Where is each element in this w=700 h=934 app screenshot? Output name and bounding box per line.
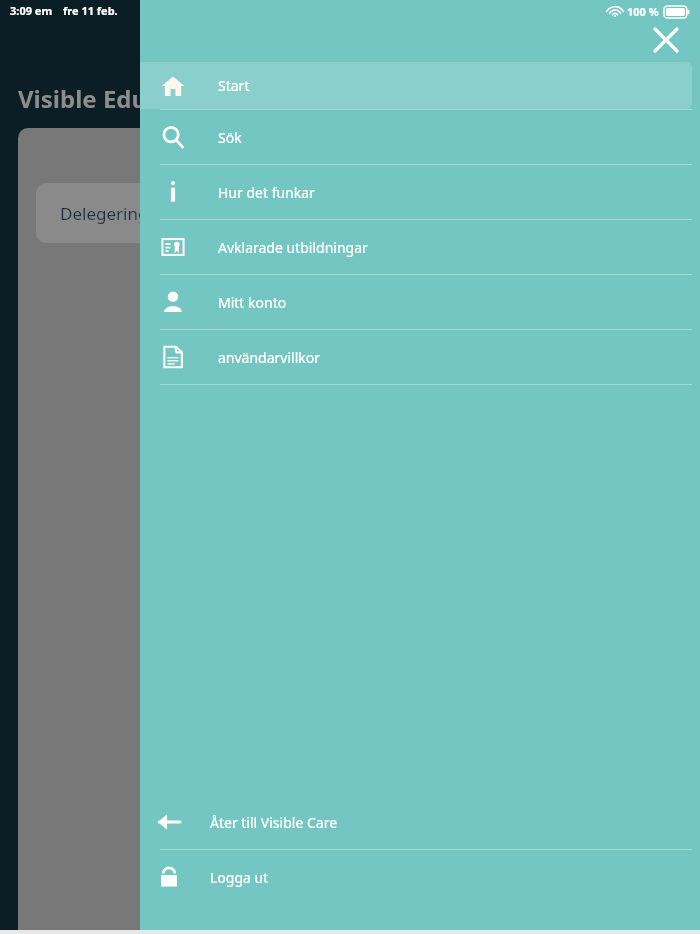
- staticText: användarvillkor: [218, 348, 321, 367]
- button[interactable]: Mitt konto: [140, 275, 700, 329]
- button[interactable]: Stäng: [648, 22, 684, 58]
- staticText: Hur det funkar: [218, 183, 315, 202]
- button[interactable]: användarvillkor: [140, 330, 700, 384]
- staticText: 3:09 em: [10, 3, 53, 18]
- staticText: Start: [218, 76, 250, 95]
- staticText: Avklarade utbildningar: [218, 238, 368, 257]
- button[interactable]: Start: [140, 62, 692, 109]
- button[interactable]: Logga ut: [140, 850, 700, 904]
- staticText: Visible Edu: [18, 82, 148, 115]
- button[interactable]: Avklarade utbildningar: [140, 220, 700, 274]
- staticText: Sök: [218, 128, 242, 147]
- staticText: Logga ut: [210, 868, 269, 887]
- staticText: Åter till Visible Care: [210, 813, 338, 832]
- button[interactable]: Sök: [140, 110, 700, 164]
- staticText: fre 11 feb.: [63, 3, 118, 18]
- staticText: Delegeringar: [60, 202, 165, 225]
- staticText: 100 %: [627, 4, 659, 19]
- button[interactable]: Hur det funkar: [140, 165, 700, 219]
- button[interactable]: Delegeringar: [36, 183, 336, 243]
- button[interactable]: Åter till Visible Care: [140, 795, 700, 849]
- staticText: Mitt konto: [218, 293, 287, 312]
